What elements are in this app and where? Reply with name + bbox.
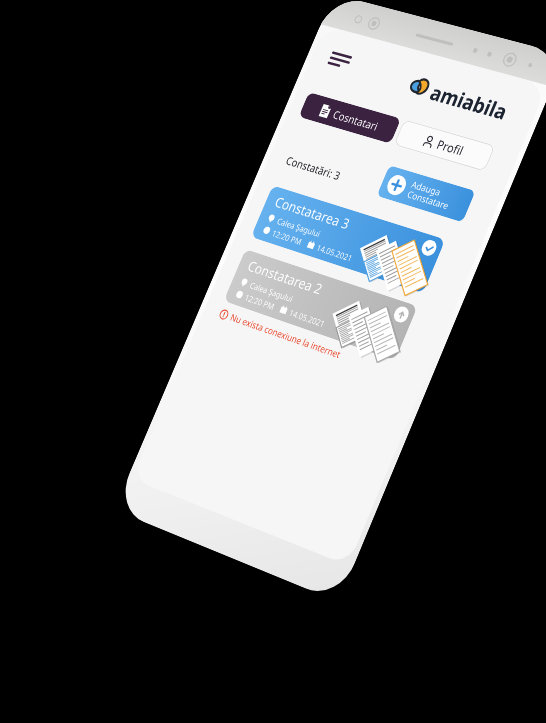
button[interactable]: Profil (394, 119, 495, 171)
staticText: Adauga Constatare (405, 178, 455, 212)
staticText: Calea Şagului (248, 279, 295, 304)
staticText: amiabila (428, 78, 512, 122)
staticText: Profil (434, 136, 467, 159)
button[interactable] (251, 185, 446, 293)
button[interactable]: Completed (419, 238, 439, 258)
button[interactable]: Upload (391, 305, 411, 324)
button[interactable]: Adauga Constatare (376, 165, 476, 222)
staticText: 14.05.2021 (315, 241, 355, 264)
staticText: 12:20 PM (243, 291, 276, 312)
button[interactable]: Menu (316, 41, 362, 79)
button[interactable] (223, 249, 418, 360)
button[interactable]: Cosntatari (298, 92, 401, 144)
staticText: Constatări: 3 (284, 153, 343, 183)
staticText: Nu exista conexiune la internet (228, 310, 343, 361)
staticText: Cosntatari (331, 107, 381, 133)
staticText: Constatarea 3 (272, 192, 353, 233)
staticText: Constatarea 2 (245, 256, 325, 298)
staticText: 14.05.2021 (288, 306, 328, 329)
staticText: 12:20 PM (270, 227, 304, 247)
staticText: Calea Şagului (276, 215, 322, 239)
